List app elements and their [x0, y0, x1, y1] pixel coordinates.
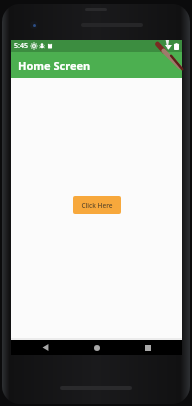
button[interactable]: Back [28, 340, 62, 355]
staticText: Home Screen [18, 58, 91, 73]
button[interactable]: Home [80, 340, 114, 355]
staticText: 5:45 [14, 41, 28, 51]
staticText: Click Here [81, 201, 113, 210]
button[interactable]: Click Here [73, 196, 121, 214]
button[interactable]: Recent apps [131, 340, 165, 355]
